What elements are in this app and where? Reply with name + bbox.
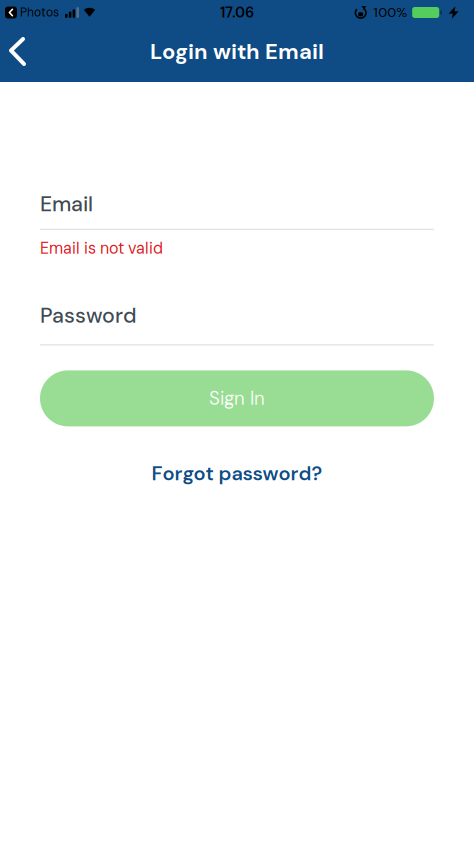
- staticText: Sign In: [209, 386, 265, 410]
- staticText: Forgot password?: [151, 460, 322, 486]
- staticText: Login with Email: [150, 37, 324, 66]
- button[interactable]: Back: [0, 37, 26, 70]
- staticText: Email: [40, 190, 93, 218]
- button[interactable]: Password: [40, 302, 434, 345]
- staticText: 100%: [373, 4, 407, 21]
- staticText: 17.06: [220, 3, 254, 22]
- staticText: Email is not valid: [40, 238, 163, 259]
- button[interactable]: Email: [40, 190, 434, 230]
- button[interactable]: Forgot password?: [40, 460, 434, 486]
- staticText: Password: [40, 302, 137, 329]
- button[interactable]: Sign In: [40, 370, 434, 426]
- staticText: Photos: [20, 5, 59, 20]
